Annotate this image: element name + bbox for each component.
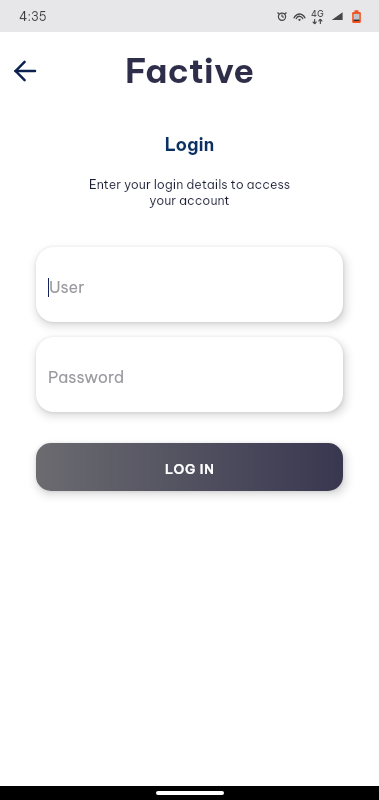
staticText: Password: [48, 367, 125, 387]
button[interactable]: User: [36, 247, 343, 322]
staticText: User: [49, 277, 85, 297]
staticText: Enter your login details to access your …: [0, 176, 379, 209]
staticText: Login: [0, 133, 379, 155]
staticText: 4G: [311, 8, 324, 19]
staticText: 4:35: [19, 9, 47, 24]
staticText: LOG IN: [165, 461, 215, 477]
button[interactable]: LOG IN: [36, 443, 343, 491]
button[interactable]: Password: [36, 337, 343, 412]
button[interactable]: Back: [3, 49, 47, 93]
staticText: Factive: [125, 49, 255, 92]
